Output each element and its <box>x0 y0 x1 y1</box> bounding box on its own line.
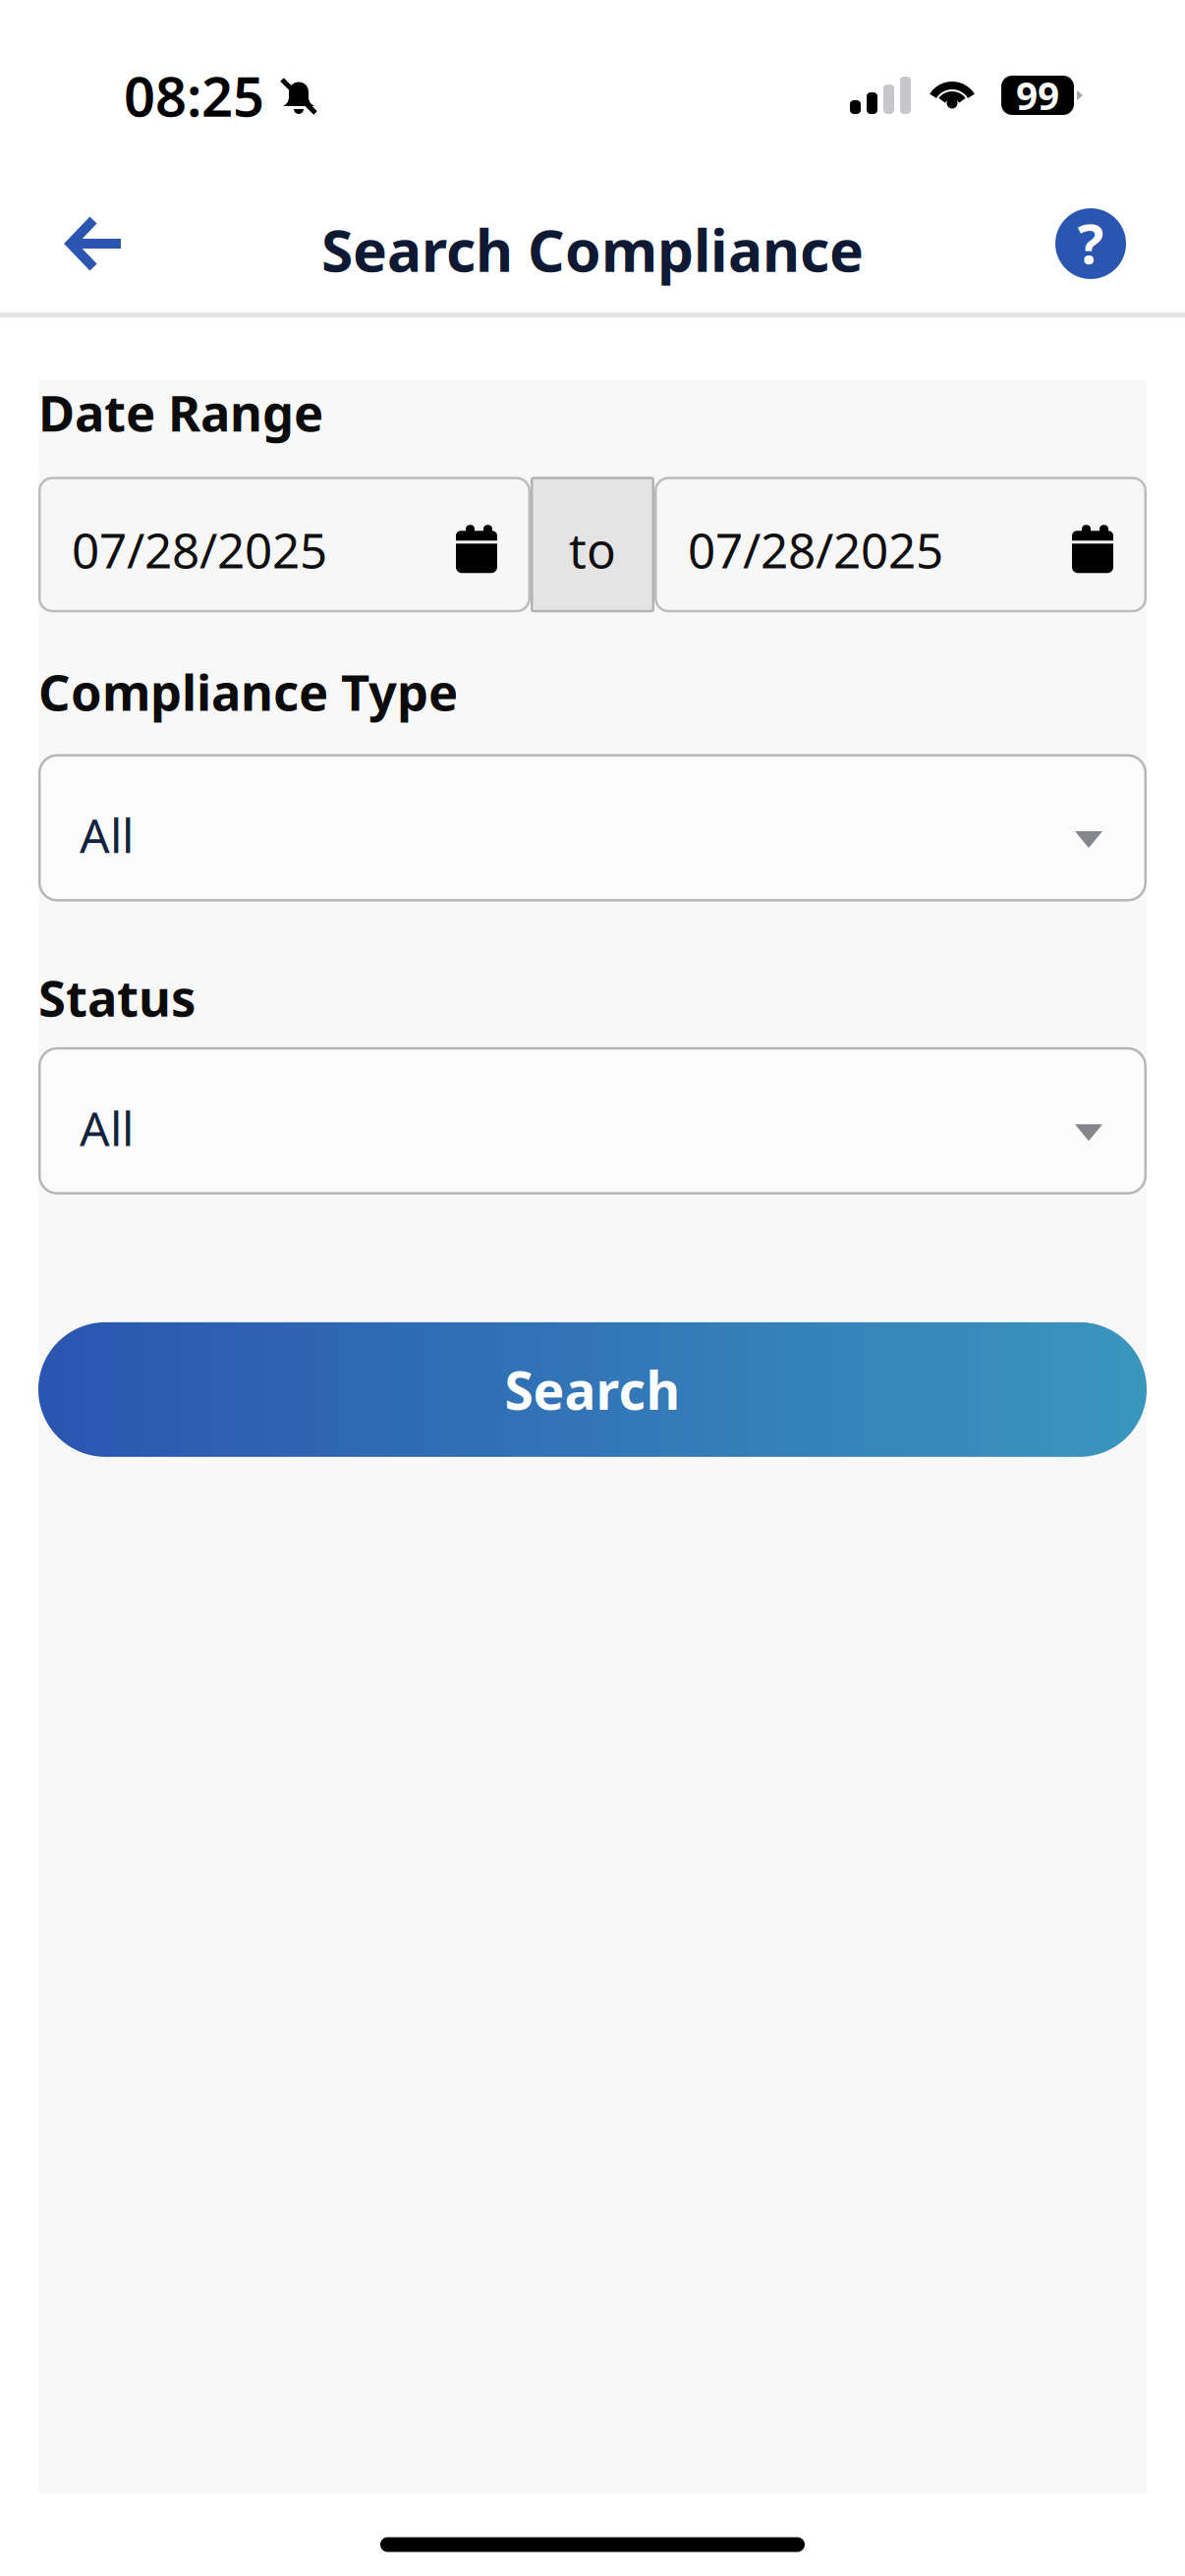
button[interactable]: 07/28/2025 <box>654 477 1147 612</box>
staticText: All <box>80 1096 134 1159</box>
button[interactable]: Search <box>38 1322 1147 1457</box>
staticText: 99 <box>1016 70 1059 120</box>
button[interactable]: 07/28/2025 <box>38 477 531 612</box>
staticText: 08:25 <box>124 59 264 132</box>
staticText: Search <box>505 1355 680 1424</box>
staticText: Status <box>38 964 196 1030</box>
staticText: Compliance Type <box>38 659 458 725</box>
staticText: to <box>569 517 616 582</box>
staticText: Date Range <box>38 379 323 445</box>
staticText: 07/28/2025 <box>72 517 327 582</box>
button[interactable]: All <box>38 754 1147 902</box>
staticText: All <box>80 803 134 866</box>
button[interactable]: All <box>38 1047 1147 1195</box>
button[interactable]: Back <box>41 190 149 298</box>
staticText: Search Compliance <box>321 211 864 288</box>
button[interactable]: Help <box>1037 190 1145 298</box>
staticText: ? <box>1077 206 1104 279</box>
staticText: 07/28/2025 <box>688 517 943 582</box>
